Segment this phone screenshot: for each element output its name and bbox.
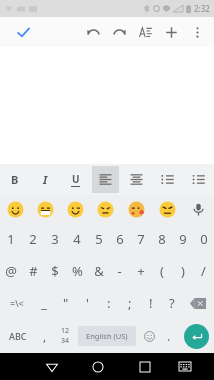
button[interactable]: Emoji (30, 195, 60, 223)
button[interactable]: ) (172, 255, 193, 287)
button[interactable]: Italic (32, 166, 58, 193)
button[interactable]: 7 (130, 223, 151, 255)
button[interactable]: Enter (184, 324, 209, 349)
button[interactable]: Add (158, 19, 184, 45)
button[interactable]: 6 (109, 223, 130, 255)
button[interactable]: ; (119, 287, 140, 319)
button[interactable]: Voice input (183, 195, 214, 223)
button[interactable]: Emoji (0, 195, 30, 223)
button[interactable]: Recent apps (122, 353, 168, 380)
button[interactable]: 5 (88, 223, 109, 255)
button[interactable]: 1 (0, 223, 22, 255)
staticText: ( (160, 262, 164, 280)
button[interactable]: ? (161, 287, 182, 319)
button[interactable]: Emoji (90, 195, 121, 223)
staticText: 2:32 (194, 3, 210, 14)
button[interactable]: $ (44, 255, 66, 287)
staticText: " (63, 294, 69, 312)
staticText: B (11, 172, 19, 187)
button[interactable]: & (88, 255, 109, 287)
button[interactable]: Align left (92, 166, 119, 193)
button[interactable]: 0 (193, 223, 214, 255)
staticText: , (43, 328, 47, 344)
staticText: . (167, 328, 171, 344)
staticText: 0 (200, 230, 208, 248)
button[interactable]: Emoji (152, 195, 183, 223)
button[interactable]: , (36, 319, 54, 353)
button[interactable]: Undo (80, 19, 106, 45)
staticText: U (72, 172, 80, 186)
button[interactable]: 3 (44, 223, 66, 255)
button[interactable]: Done (10, 19, 36, 45)
button[interactable]: Emoji (121, 195, 152, 223)
button[interactable]: : (98, 287, 119, 319)
staticText: / (201, 262, 206, 280)
button[interactable]: @ (0, 255, 22, 287)
button[interactable]: 2 (22, 223, 44, 255)
button[interactable]: 9 (172, 223, 193, 255)
staticText: ABC (9, 330, 27, 342)
staticText: ! (149, 294, 153, 312)
button[interactable]: Bulleted list (185, 166, 212, 193)
button[interactable]: =\< (0, 287, 33, 319)
staticText: ; (128, 294, 132, 312)
button[interactable]: " (55, 287, 77, 319)
staticText: 7 (137, 230, 145, 248)
button[interactable]: - (109, 255, 130, 287)
staticText: + (137, 262, 145, 280)
staticText: English (US) (86, 331, 128, 341)
button[interactable]: / (193, 255, 214, 287)
button[interactable]: % (66, 255, 88, 287)
staticText: =\< (10, 297, 24, 309)
button[interactable]: ' (77, 287, 98, 319)
button[interactable]: 8 (151, 223, 172, 255)
staticText: 3 (51, 230, 59, 248)
staticText: ? (169, 294, 175, 312)
button[interactable]: Emoji (60, 195, 90, 223)
button[interactable]: _ (33, 287, 55, 319)
button[interactable]: Delete (182, 287, 214, 319)
button[interactable]: Redo (106, 19, 132, 45)
staticText: : (107, 294, 111, 312)
staticText: 2 (29, 230, 37, 248)
button[interactable]: Underline (62, 166, 88, 193)
button[interactable]: 4 (66, 223, 88, 255)
button[interactable]: Hide keyboard (168, 353, 202, 380)
button[interactable]: # (22, 255, 44, 287)
button[interactable]: Numbers (54, 319, 76, 353)
button[interactable]: Formatting (132, 19, 158, 45)
staticText: ) (181, 262, 185, 280)
staticText: 1 (7, 230, 15, 248)
staticText: 9 (179, 230, 187, 248)
button[interactable]: More options (184, 19, 210, 45)
button[interactable]: Align center (123, 166, 150, 193)
staticText: ' (86, 294, 89, 312)
staticText: _ (41, 294, 47, 312)
staticText: I (43, 172, 48, 187)
staticText: $ (51, 262, 59, 280)
staticText: @ (5, 262, 17, 280)
button[interactable]: ABC (0, 319, 36, 353)
staticText: 12 (61, 326, 70, 336)
button[interactable]: Bold (2, 166, 28, 193)
button[interactable]: ! (140, 287, 161, 319)
button[interactable]: English (US) (78, 326, 136, 346)
staticText: 5 (95, 230, 103, 248)
staticText: 8 (158, 230, 166, 248)
button[interactable]: Back (30, 353, 73, 380)
button[interactable]: + (130, 255, 151, 287)
staticText: - (117, 262, 122, 280)
staticText: % (72, 262, 83, 280)
button[interactable]: Numbered list (154, 166, 181, 193)
staticText: 34 (61, 336, 70, 346)
button[interactable]: . (160, 319, 178, 353)
staticText: 6 (116, 230, 124, 248)
button[interactable]: Emoji (138, 319, 160, 353)
staticText: # (29, 262, 38, 280)
staticText: 4 (73, 230, 81, 248)
button[interactable]: ( (151, 255, 172, 287)
button[interactable]: Home (73, 353, 122, 380)
staticText: & (94, 262, 104, 280)
